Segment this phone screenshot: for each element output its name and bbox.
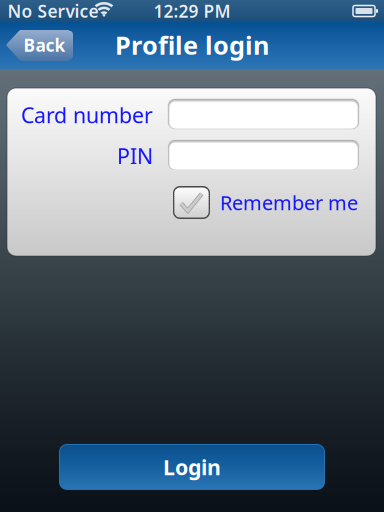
staticText: Back xyxy=(23,33,65,56)
staticText: No Service xyxy=(7,0,98,22)
button[interactable]: Login xyxy=(59,444,325,490)
staticText: Remember me xyxy=(220,189,358,216)
staticText: 12:29 PM xyxy=(153,0,230,22)
staticText: PIN xyxy=(117,142,153,170)
staticText: Profile login xyxy=(115,28,269,62)
staticText: Login xyxy=(163,453,221,481)
button[interactable]: Remember me xyxy=(173,186,210,219)
staticText: Card number xyxy=(21,101,153,129)
button[interactable]: Back xyxy=(6,30,73,60)
